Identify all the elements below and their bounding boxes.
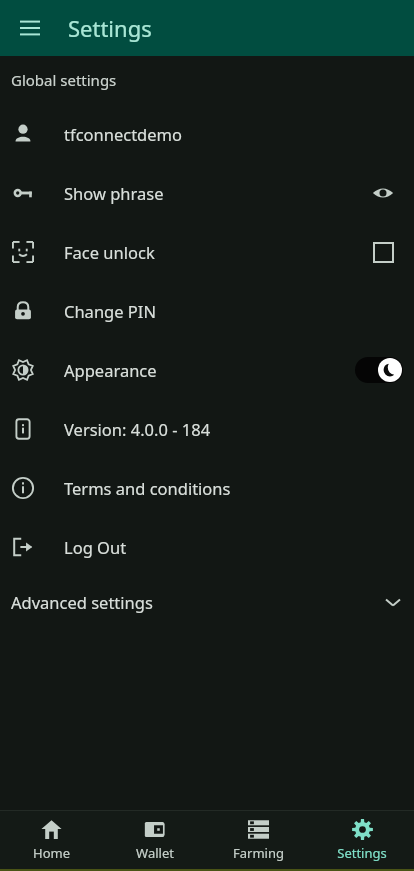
button[interactable]: tfconnectdemo [0,104,414,163]
staticText: Face unlock [64,241,155,263]
button[interactable]: Log Out [0,517,414,576]
button[interactable]: Home [0,811,103,869]
staticText: Appearance [64,359,157,381]
button[interactable]: Show phrase [363,173,403,213]
staticText: Version: 4.0.0 - 184 [64,418,211,440]
button[interactable]: Menu [6,4,54,52]
staticText: Settings [68,13,152,43]
button[interactable]: Wallet [103,811,206,869]
button[interactable]: Terms and conditions [0,458,414,517]
staticText: Show phrase [64,182,164,204]
button[interactable]: Farming [206,811,310,869]
staticText: Global settings [11,70,117,90]
button[interactable]: Version: 4.0.0 - 184 [0,399,414,458]
button[interactable]: Settings [310,811,414,869]
staticText: Change PIN [64,300,156,322]
staticText: Log Out [64,536,127,558]
staticText: tfconnectdemo [64,123,182,145]
button[interactable]: Face unlock [0,222,414,281]
button[interactable]: Appearance [0,340,414,399]
button[interactable]: Show phrase [0,163,414,222]
button[interactable]: Change PIN [0,281,414,340]
staticText: Settings [337,844,387,862]
staticText: Home [33,844,70,862]
button[interactable]: Face unlock toggle [363,232,403,272]
button[interactable]: Advanced settings [0,576,414,628]
button[interactable]: Dark mode [355,357,403,383]
staticText: Farming [233,844,284,862]
staticText: Wallet [136,844,174,862]
staticText: Advanced settings [11,591,153,613]
staticText: Terms and conditions [64,477,231,499]
